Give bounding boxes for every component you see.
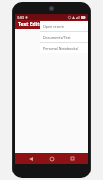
staticText: 3:03 [17, 15, 24, 20]
button[interactable]: Personal Notebooks/e2ff.txt [40, 43, 88, 53]
staticText: Open recent [43, 24, 64, 29]
staticText: Text Editor [18, 21, 45, 28]
button[interactable]: Open recent [40, 21, 88, 31]
button[interactable] [15, 29, 88, 153]
button[interactable]: Home [46, 153, 57, 164]
button[interactable]: Back [25, 153, 36, 164]
staticText: Personal Notebooks/e2ff.txt [43, 46, 86, 51]
button[interactable]: Recents [67, 153, 78, 164]
staticText: Documents/Text Editor.txt [43, 35, 86, 40]
button[interactable]: Documents/Text Editor.txt [40, 32, 88, 42]
